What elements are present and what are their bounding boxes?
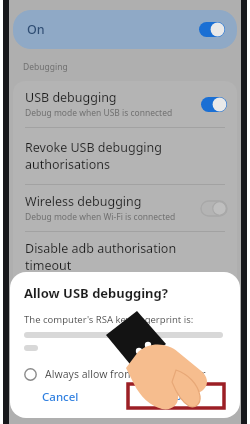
staticText: USB debugging bbox=[25, 89, 117, 106]
button[interactable]: Cancel bbox=[28, 383, 93, 409]
staticText: Wireless debugging bbox=[25, 193, 142, 210]
staticText: On bbox=[27, 21, 45, 38]
button[interactable]: Revoke USB debugging authorisations bbox=[13, 128, 237, 184]
button[interactable]: Disable adb authorisation timeout bbox=[13, 232, 237, 344]
button[interactable]: Always allow from this computer bbox=[10, 365, 240, 383]
staticText: Disable automatic revocation of adb auth… bbox=[25, 275, 195, 336]
staticText: The computer's RSA key fingerprint is: bbox=[24, 313, 194, 326]
button[interactable]: USB debugging bbox=[13, 81, 237, 127]
staticText: Cancel bbox=[42, 389, 79, 403]
button[interactable]: On bbox=[13, 10, 237, 49]
button[interactable]: Allow bbox=[128, 384, 224, 408]
staticText: Disable adb authorisation timeout bbox=[25, 240, 195, 274]
staticText: Allow bbox=[161, 388, 191, 404]
other: Tap Allow bbox=[0, 0, 250, 424]
staticText: Debugging bbox=[23, 61, 68, 73]
staticText: Debug mode when USB is connected bbox=[25, 107, 173, 119]
staticText: Debug mode when Wi-Fi is connected bbox=[25, 211, 176, 223]
button[interactable]: Wireless debugging bbox=[13, 185, 237, 231]
staticText: Allow USB debugging? bbox=[24, 284, 168, 302]
staticText: Always allow from this computer bbox=[45, 367, 206, 381]
staticText: Revoke USB debugging authorisations bbox=[25, 139, 221, 173]
